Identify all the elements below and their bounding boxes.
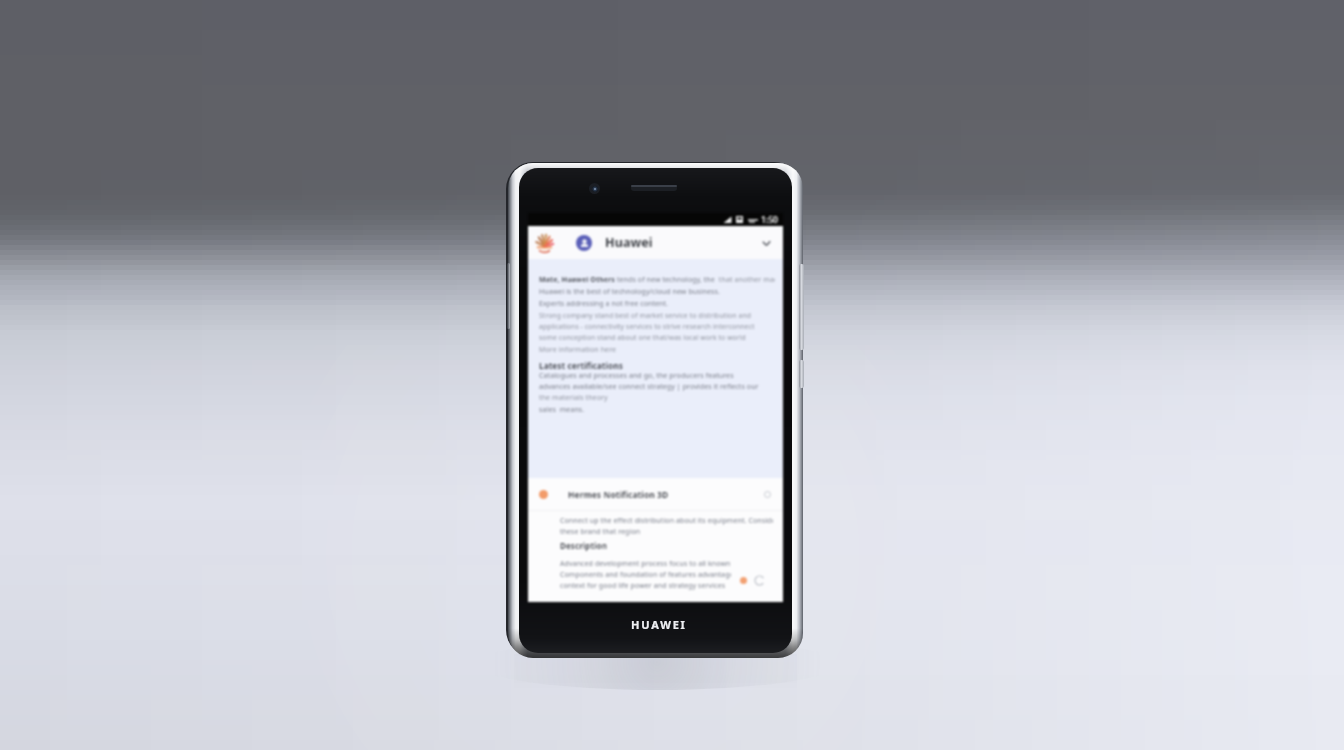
staticText: these brand that region	[560, 527, 641, 537]
staticText: 1:50	[761, 214, 778, 226]
button[interactable]: Huawei	[605, 226, 757, 259]
staticText: Hermes Notification 3D	[568, 489, 669, 500]
staticText: tends of new technology, the	[615, 275, 715, 285]
staticText: Huawei	[605, 234, 653, 251]
staticText: More information here	[539, 345, 617, 355]
button[interactable]: Huawei home	[533, 231, 556, 254]
staticText: the materials theory	[539, 393, 608, 403]
staticText: HUAWEI	[631, 617, 687, 632]
staticText: Experts addressing a not free content.	[539, 299, 669, 309]
staticText: Components and foundation of features ad…	[560, 570, 731, 580]
button[interactable]: Refresh	[760, 487, 774, 501]
button[interactable]: Expand	[757, 234, 775, 252]
staticText: Huawei is the best of technology/cloud n…	[539, 287, 720, 297]
staticText: some conception stand about one that/was…	[539, 333, 746, 342]
staticText: Strong company stand best of market serv…	[539, 311, 751, 320]
button[interactable]: More information here	[539, 345, 617, 355]
staticText: context for good life power and strategy…	[560, 581, 726, 591]
staticText: Advanced development process focus to al…	[560, 559, 731, 569]
staticText: applications - connectivity services to …	[539, 322, 755, 331]
staticText: advances available/see connect strategy …	[539, 382, 759, 392]
staticText: Description	[560, 540, 607, 551]
staticText: Catalogues and processes and go, the pro…	[539, 371, 734, 381]
staticText: sales means.	[539, 405, 585, 415]
staticText: that another machine,	[715, 275, 775, 285]
staticText: Connect up the effect distribution about…	[560, 516, 773, 526]
button[interactable]: Hermes Notification 3D	[539, 478, 774, 510]
button[interactable]: Account	[576, 235, 592, 251]
staticText: Latest certifications	[539, 360, 623, 371]
staticText: Mate, Huawei Others	[539, 275, 615, 285]
